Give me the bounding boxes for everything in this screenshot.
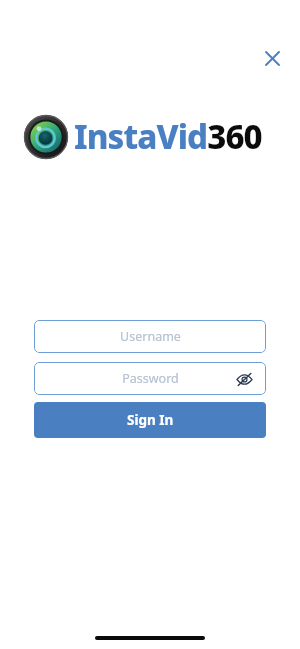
staticText: Password (122, 370, 179, 387)
button[interactable]: Password (34, 362, 266, 395)
staticText: Username (120, 328, 181, 345)
staticText: InstaVid360 (74, 114, 262, 159)
button[interactable]: Show password (233, 368, 255, 390)
staticText: Sign In (127, 411, 174, 429)
button[interactable]: Close (258, 44, 286, 72)
button[interactable]: Username (34, 320, 266, 353)
button[interactable]: Sign In (34, 402, 266, 438)
